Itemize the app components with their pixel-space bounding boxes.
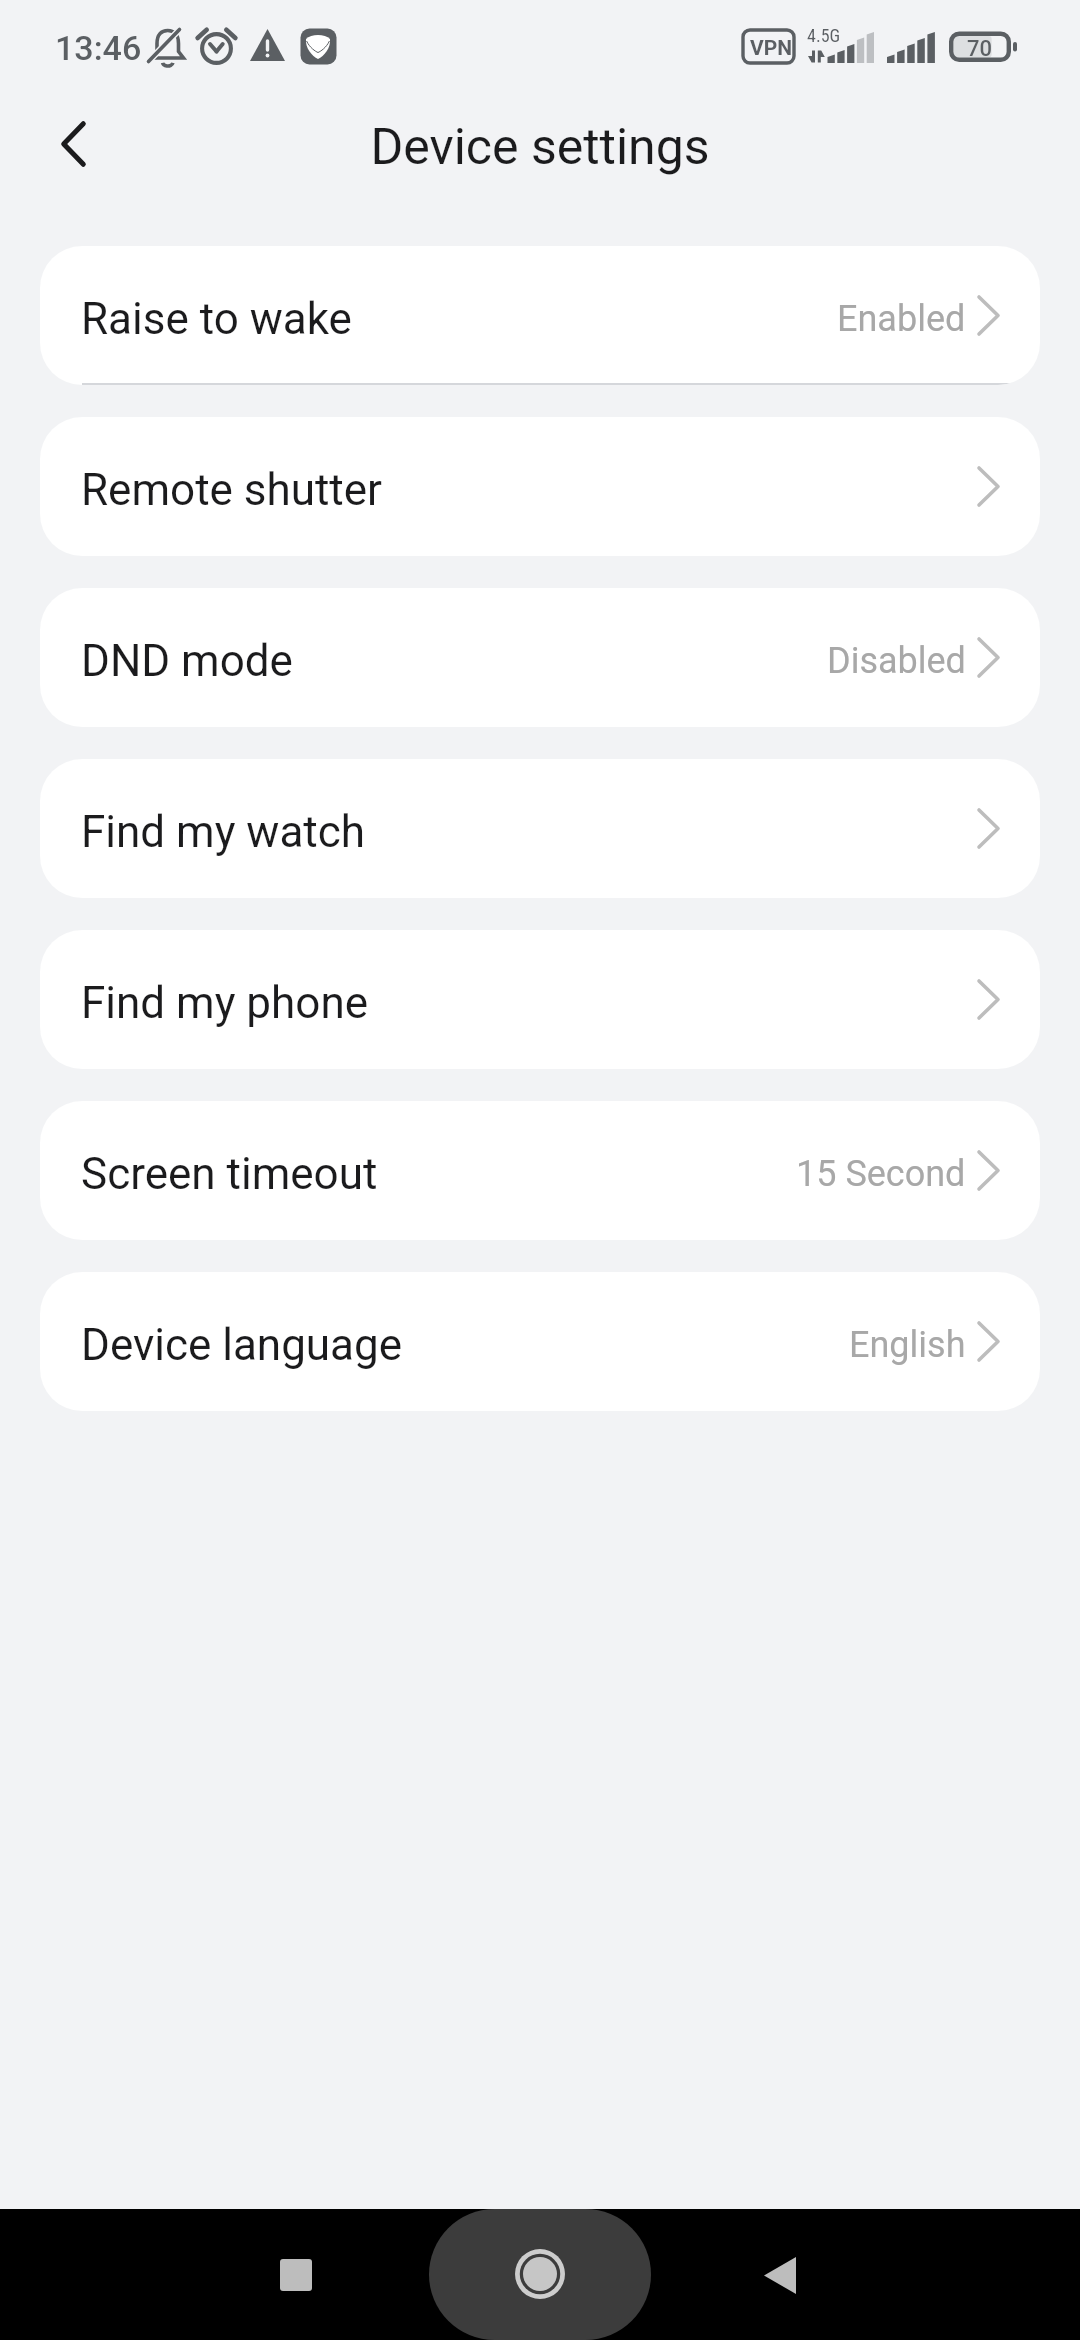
staticText: Remote shutter <box>81 464 382 516</box>
staticText: 70 <box>967 36 993 62</box>
staticText: Device language <box>81 1319 403 1371</box>
button[interactable]: Back <box>740 2235 820 2315</box>
staticText: 13:46 <box>55 28 142 68</box>
button[interactable]: Find my phone <box>40 930 1040 1069</box>
staticText: DND mode <box>81 635 293 687</box>
staticText: English <box>849 1324 966 1366</box>
staticText: VPN <box>750 36 793 61</box>
staticText: 15 Second <box>796 1153 966 1195</box>
button[interactable]: Recent apps <box>256 2235 336 2315</box>
staticText: Screen timeout <box>81 1148 378 1200</box>
button[interactable]: Screen timeout <box>40 1101 1040 1240</box>
button[interactable]: Home <box>429 2209 651 2340</box>
button[interactable]: Back <box>36 107 110 181</box>
button[interactable]: Device language <box>40 1272 1040 1411</box>
staticText: Device settings <box>370 118 710 177</box>
button[interactable]: Remote shutter <box>40 417 1040 556</box>
staticText: Enabled <box>837 298 966 340</box>
staticText: Find my watch <box>81 806 366 858</box>
button[interactable]: DND mode <box>40 588 1040 727</box>
button[interactable]: Find my watch <box>40 759 1040 898</box>
staticText: 4.5G <box>807 25 841 46</box>
staticText: Find my phone <box>81 977 369 1029</box>
staticText: Raise to wake <box>81 293 352 345</box>
staticText: Disabled <box>827 640 966 682</box>
button[interactable]: Raise to wake <box>40 246 1040 385</box>
